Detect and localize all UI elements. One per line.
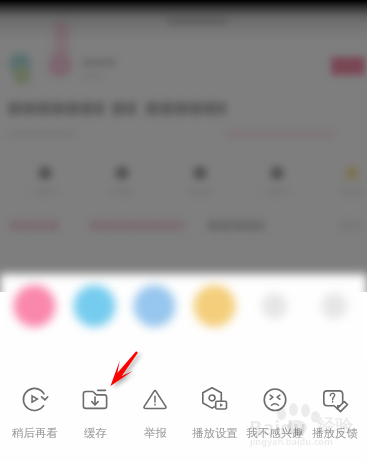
button[interactable]: 举报 — [125, 386, 185, 450]
button[interactable]: 稍后再看 — [5, 386, 65, 450]
staticText: 经验 — [317, 415, 353, 438]
button[interactable]: QQ — [133, 284, 177, 328]
button[interactable]: 缓存 — [65, 386, 125, 450]
staticText: 缓存 — [84, 426, 107, 440]
button[interactable]: Moments — [73, 284, 117, 328]
staticText: 稍后再看 — [12, 426, 58, 440]
button[interactable]: 我不感兴趣 — [245, 386, 305, 450]
button[interactable]: 播放反馈 — [305, 386, 365, 450]
staticText: 播放反馈 — [312, 426, 358, 440]
staticText: 举报 — [144, 426, 167, 440]
button[interactable]: WeChat — [13, 284, 57, 328]
button[interactable]: Copy link — [313, 284, 357, 328]
staticText: 我不感兴趣 — [246, 426, 304, 440]
staticText: Baidu — [249, 414, 306, 441]
staticText: 播放设置 — [192, 426, 238, 440]
button[interactable]: 播放设置 — [185, 386, 245, 450]
staticText: jingyan.baidu.com — [250, 435, 333, 447]
button[interactable]: QZone — [193, 284, 237, 328]
button[interactable]: Weibo — [253, 284, 297, 328]
